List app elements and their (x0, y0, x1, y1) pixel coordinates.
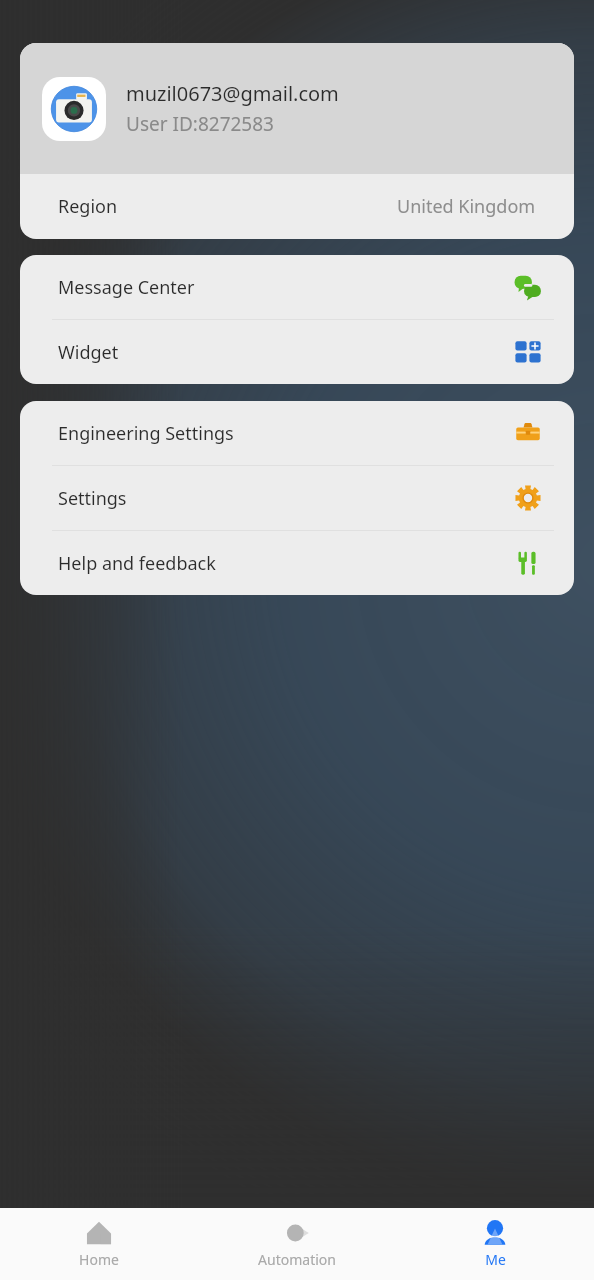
button[interactable]: Message Center (20, 255, 574, 319)
staticText: Region (58, 194, 118, 219)
button[interactable]: Profile picture (20, 43, 574, 174)
staticText: Me (485, 1250, 506, 1269)
other: Widget (514, 338, 542, 366)
other: Automation (283, 1219, 311, 1247)
staticText: muzil0673@gmail.com (126, 80, 339, 107)
button[interactable]: Me (396, 1213, 594, 1275)
button[interactable]: Home (0, 1213, 198, 1275)
button[interactable]: Help and feedback (20, 531, 574, 595)
staticText: User ID:8272583 (126, 111, 274, 137)
button[interactable]: Automation (198, 1213, 396, 1275)
staticText: Settings (58, 486, 127, 511)
staticText: United Kingdom (397, 194, 536, 219)
staticText: Engineering Settings (58, 421, 234, 446)
staticText: Home (79, 1250, 119, 1269)
button[interactable]: Engineering Settings (20, 401, 574, 465)
button[interactable]: Widget (20, 320, 574, 384)
staticText: Help and feedback (58, 551, 216, 576)
other: Engineering Settings (514, 419, 542, 447)
staticText: Automation (258, 1250, 336, 1269)
other: Help and feedback (514, 549, 542, 577)
button[interactable]: Profile picture (42, 77, 106, 141)
other: Message Center (514, 273, 542, 301)
button[interactable]: Region (20, 174, 574, 239)
staticText: Message Center (58, 275, 195, 300)
staticText: Widget (58, 340, 119, 365)
button[interactable]: Settings (20, 466, 574, 530)
other: Settings (514, 484, 542, 512)
